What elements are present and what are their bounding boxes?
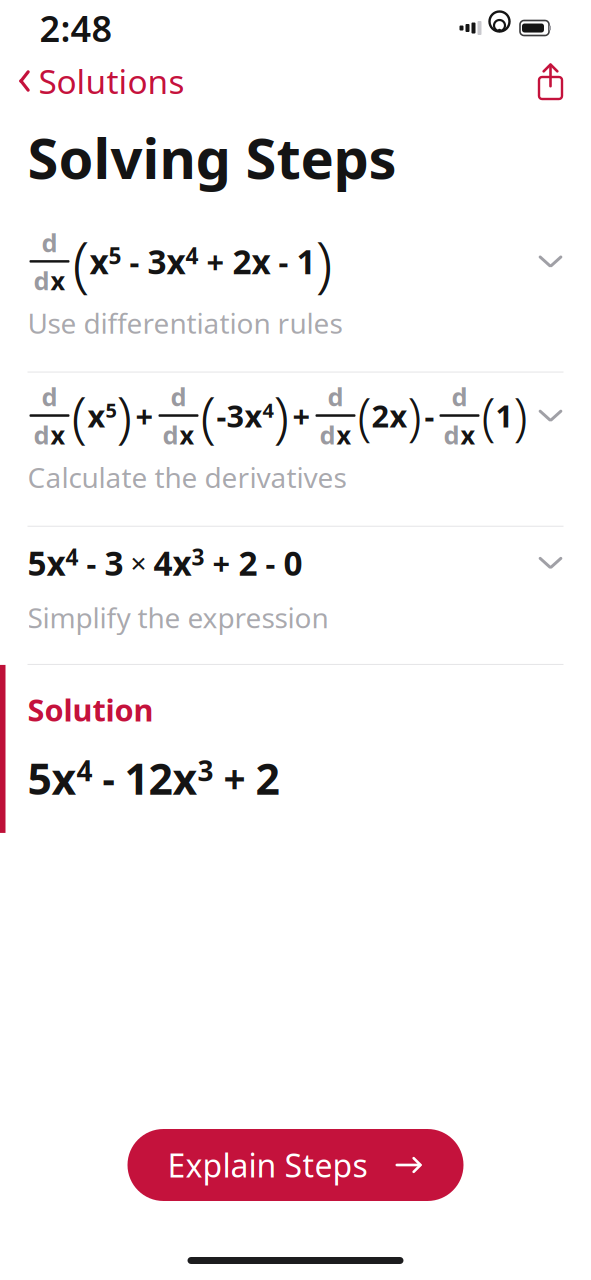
staticText: x bbox=[244, 395, 262, 436]
staticText: 0 bbox=[283, 541, 302, 585]
staticText: Calculate the derivatives bbox=[27, 458, 346, 496]
staticText: + bbox=[292, 395, 310, 436]
staticText: d bbox=[319, 418, 335, 451]
staticText: d bbox=[162, 418, 178, 451]
staticText: 4 bbox=[262, 397, 273, 423]
staticText: ( bbox=[200, 378, 216, 453]
staticText: + bbox=[135, 395, 153, 436]
staticText: x bbox=[179, 418, 194, 451]
staticText: + bbox=[204, 542, 238, 583]
staticText: x bbox=[336, 418, 351, 451]
staticText: 2:48 bbox=[39, 4, 112, 52]
staticText: x bbox=[251, 239, 270, 283]
staticText: 12 bbox=[124, 750, 172, 807]
staticText: x bbox=[172, 541, 191, 585]
staticText: - bbox=[92, 753, 124, 804]
staticText: x bbox=[460, 418, 475, 451]
staticText: ( bbox=[357, 382, 371, 449]
staticText: d bbox=[451, 380, 467, 413]
staticText: x bbox=[389, 395, 407, 436]
button[interactable]: Solutions bbox=[0, 53, 194, 109]
staticText: 1 bbox=[495, 395, 513, 436]
staticText: Solving Steps bbox=[27, 120, 396, 194]
staticText: + bbox=[198, 241, 232, 282]
staticText: - bbox=[270, 241, 296, 282]
staticText: x bbox=[46, 541, 65, 585]
staticText: Use differentiation rules bbox=[27, 304, 342, 342]
staticText: 3 bbox=[147, 239, 166, 283]
staticText: Solutions bbox=[38, 59, 184, 103]
staticText: - bbox=[216, 395, 226, 436]
staticText: ) bbox=[407, 382, 421, 449]
staticText: ) bbox=[315, 221, 332, 302]
staticText: 5 bbox=[105, 397, 116, 423]
staticText: 5 bbox=[27, 541, 46, 585]
staticText: Solution bbox=[27, 689, 153, 730]
staticText: x bbox=[172, 750, 197, 807]
staticText: ) bbox=[513, 382, 527, 449]
staticText: 3 bbox=[191, 542, 204, 572]
staticText: × bbox=[123, 544, 153, 581]
staticText: x bbox=[51, 750, 76, 807]
staticText: 4 bbox=[185, 240, 198, 270]
staticText: 2 bbox=[255, 750, 279, 807]
staticText: 1 bbox=[296, 239, 315, 283]
staticText: d bbox=[443, 418, 459, 451]
staticText: d bbox=[170, 380, 186, 413]
staticText: - bbox=[424, 395, 434, 436]
staticText: ) bbox=[273, 378, 289, 453]
staticText: d bbox=[33, 264, 49, 297]
staticText: x bbox=[50, 418, 65, 451]
staticText: - bbox=[257, 542, 283, 583]
staticText: 3 bbox=[197, 752, 213, 789]
staticText: 2 bbox=[232, 239, 251, 283]
button[interactable]: Explain Steps bbox=[127, 1129, 463, 1201]
button[interactable]: Share bbox=[533, 59, 591, 103]
staticText: Simplify the expression bbox=[27, 599, 328, 636]
staticText: d bbox=[41, 380, 57, 413]
staticText: x bbox=[50, 264, 65, 297]
staticText: 5 bbox=[108, 240, 121, 270]
button[interactable]: 5 bbox=[0, 527, 591, 664]
staticText: 3 bbox=[104, 541, 123, 585]
staticText: x bbox=[89, 239, 108, 283]
staticText: ( bbox=[71, 378, 87, 453]
staticText: ( bbox=[72, 221, 89, 302]
button[interactable]: d bbox=[0, 218, 591, 372]
staticText: 2 bbox=[238, 541, 257, 585]
staticText: d bbox=[33, 418, 49, 451]
staticText: 4 bbox=[76, 752, 92, 789]
staticText: 5 bbox=[27, 750, 51, 807]
staticText: d bbox=[327, 380, 343, 413]
staticText: - bbox=[121, 241, 147, 282]
staticText: - bbox=[78, 542, 104, 583]
staticText: 2 bbox=[371, 395, 389, 436]
staticText: ( bbox=[481, 382, 495, 449]
staticText: ) bbox=[116, 378, 132, 453]
staticText: x bbox=[87, 395, 105, 436]
button[interactable]: d bbox=[0, 372, 591, 526]
staticText: + bbox=[213, 753, 255, 804]
staticText: 4 bbox=[65, 542, 78, 572]
staticText: Explain Steps bbox=[167, 1144, 367, 1186]
staticText: d bbox=[41, 225, 57, 259]
staticText: 4 bbox=[153, 541, 172, 585]
staticText: x bbox=[166, 239, 185, 283]
staticText: 3 bbox=[226, 395, 244, 436]
